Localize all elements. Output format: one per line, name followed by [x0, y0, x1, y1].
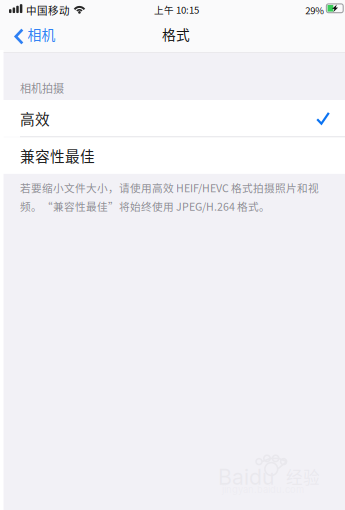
button[interactable]: 兼容性最佳: [0, 137, 345, 174]
staticText: 相机: [27, 24, 55, 44]
staticText: 若要缩小文件大小，请使用高效 HEIF/HEVC 格式拍摄照片和视频。“兼容性最…: [20, 180, 319, 214]
staticText: 兼容性最佳: [20, 145, 95, 166]
staticText: 格式: [162, 24, 190, 44]
button[interactable]: 高效: [0, 100, 345, 136]
staticText: Baidu: [218, 464, 275, 490]
staticText: 29%: [305, 3, 324, 17]
staticText: 中国移动: [26, 2, 70, 18]
staticText: 高效: [20, 108, 50, 129]
staticText: 相机拍摄: [20, 80, 64, 96]
staticText: 上午 10:15: [154, 2, 199, 16]
button[interactable]: 相机: [0, 20, 65, 52]
